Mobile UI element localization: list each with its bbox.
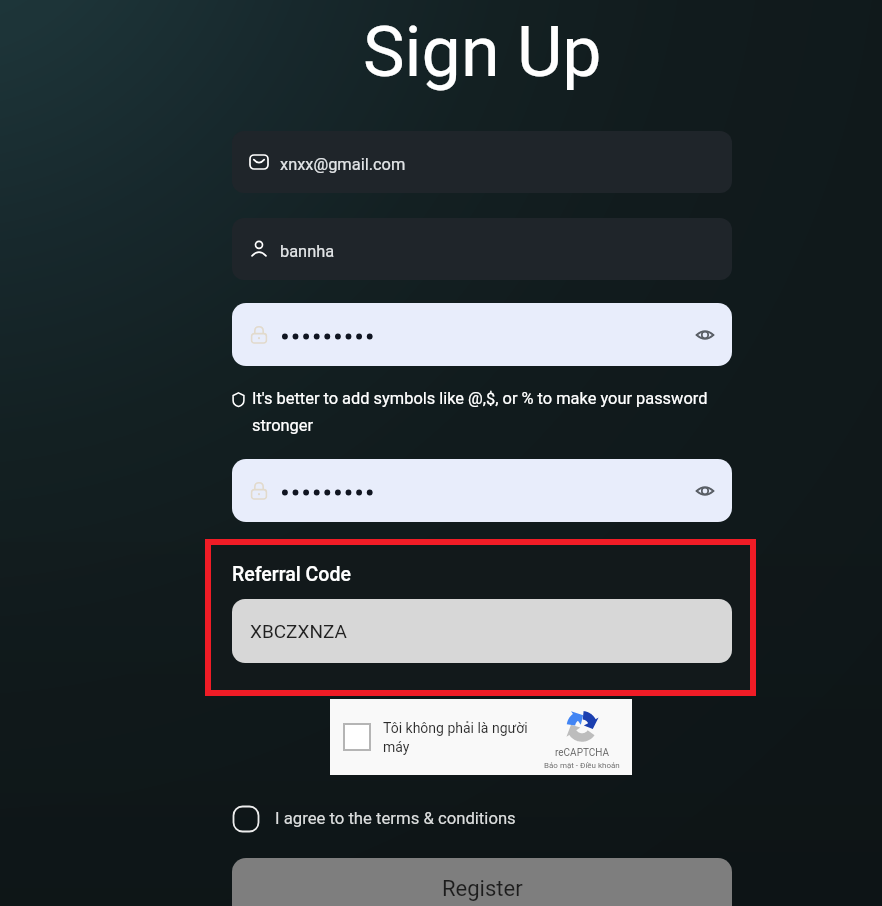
staticText: Register [442,876,523,902]
button[interactable]: Show password [683,469,727,513]
staticText: Sign Up [363,11,602,93]
staticText: Tôi không phải là người máy [383,720,533,755]
button[interactable]: XBCZXNZA [232,599,732,663]
staticText: bannha [280,242,335,261]
button[interactable]: Tôi không phải là người máy [330,699,632,775]
staticText: Bảo mật - Điều khoản [544,761,620,770]
button[interactable]: Show password [232,459,732,522]
button[interactable]: Agree to terms [232,805,260,833]
button[interactable]: Show password [683,313,727,357]
staticText: Referral Code [232,563,351,586]
button[interactable]: xnxx@gmail.com [232,131,732,193]
staticText: reCAPTCHA [555,747,610,759]
staticText: I agree to the terms & conditions [275,809,516,829]
staticText: xnxx@gmail.com [280,155,406,174]
button[interactable]: Show password [232,303,732,366]
button[interactable]: Register [232,858,732,906]
staticText: It's better to add symbols like @,$, or … [252,389,721,435]
button[interactable]: bannha [232,218,732,280]
staticText: XBCZXNZA [250,620,347,642]
